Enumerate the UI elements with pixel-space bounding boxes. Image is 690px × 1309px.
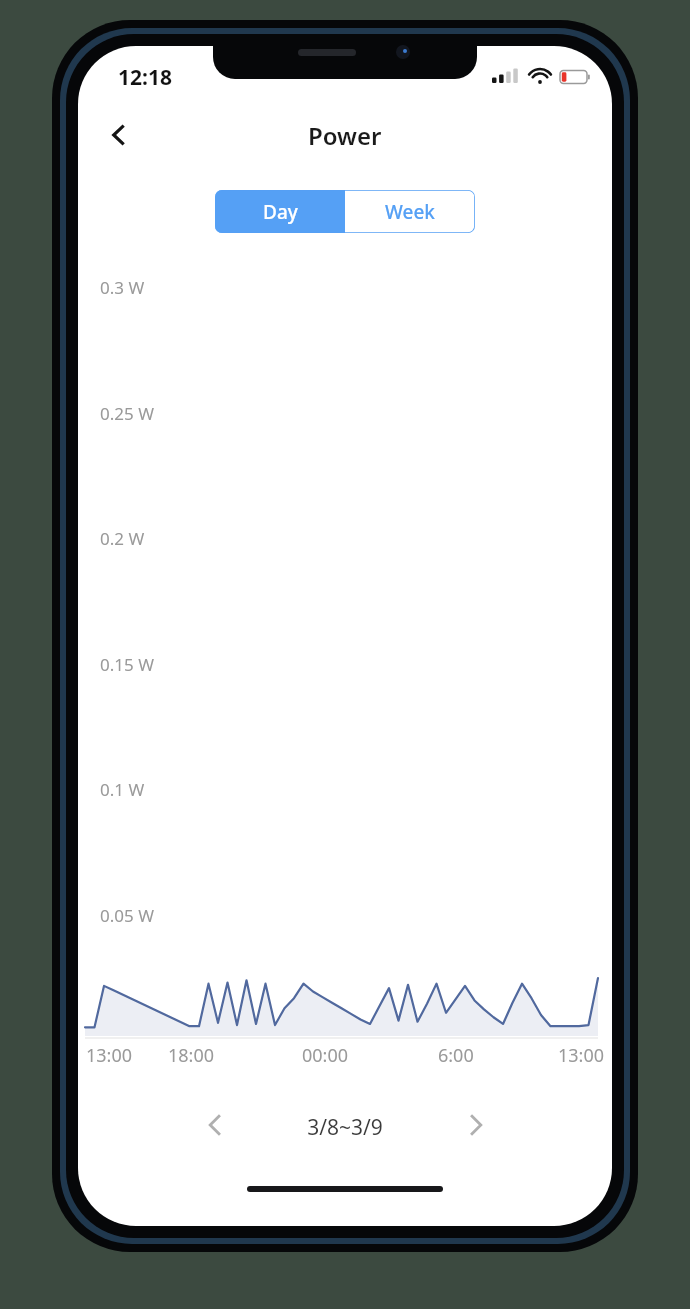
staticText: 0.1 W (100, 778, 145, 801)
button[interactable]: Day (215, 190, 345, 233)
staticText: 18:00 (168, 1043, 215, 1068)
staticText: 13:00 (558, 1043, 605, 1068)
button[interactable]: Next period (447, 1096, 505, 1154)
staticText: Week (385, 199, 435, 225)
staticText: Day (263, 199, 298, 225)
staticText: 00:00 (302, 1043, 349, 1068)
staticText: Power (308, 119, 382, 152)
staticText: 0.15 W (100, 653, 154, 676)
staticText: 0.25 W (100, 402, 154, 425)
staticText: 0.2 W (100, 527, 145, 550)
staticText: 0.3 W (100, 276, 145, 299)
button[interactable]: Back (92, 108, 146, 162)
staticText: 3/8~3/9 (307, 1113, 383, 1142)
staticText: 13:00 (86, 1043, 133, 1068)
button[interactable]: Week (345, 190, 475, 233)
staticText: 12:18 (118, 63, 172, 92)
staticText: 0.05 W (100, 904, 154, 927)
button[interactable]: Previous period (186, 1096, 244, 1154)
staticText: 6:00 (438, 1043, 474, 1068)
